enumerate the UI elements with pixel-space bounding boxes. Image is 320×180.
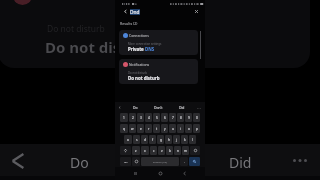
button[interactable]: r (145, 124, 152, 133)
staticText: Do not disturb (128, 71, 148, 75)
button[interactable]: 5 (153, 113, 160, 122)
staticText: 2 (132, 116, 134, 120)
staticText: o (188, 127, 190, 131)
button[interactable]: w (129, 124, 136, 133)
button[interactable]: Search (189, 157, 200, 166)
button[interactable]: n (174, 146, 181, 155)
button[interactable]: Emoji (132, 157, 140, 166)
staticText: l (192, 138, 193, 142)
button[interactable]: q (120, 124, 128, 133)
button[interactable]: f (149, 135, 156, 144)
staticText: e (140, 127, 142, 131)
button[interactable]: t (153, 124, 160, 133)
button[interactable]: Dnd (130, 9, 140, 15)
staticText: u (172, 127, 174, 131)
button[interactable]: Notifications (119, 59, 198, 84)
staticText: q (123, 127, 125, 131)
button[interactable]: 8 (177, 113, 184, 122)
button[interactable]: Shift (120, 146, 131, 155)
staticText: Do (133, 105, 138, 110)
button[interactable]: Period (180, 157, 188, 166)
staticText: y (164, 127, 166, 131)
staticText: ‹ (119, 104, 121, 111)
staticText: p (196, 127, 198, 131)
staticText: Do not disturb (47, 23, 105, 35)
staticText: 5 (156, 116, 158, 120)
button[interactable]: 4 (145, 113, 152, 122)
staticText: n (177, 149, 179, 153)
staticText: 3 (140, 116, 142, 120)
staticText: a (127, 138, 129, 142)
button[interactable]: p (193, 124, 200, 133)
staticText: Notifications (129, 62, 150, 67)
staticText: v (161, 149, 163, 153)
staticText: Did (179, 105, 185, 110)
staticText: j (176, 138, 177, 142)
staticText: 0 (196, 116, 198, 120)
button[interactable]: l (189, 135, 196, 144)
staticText: 1 (123, 116, 125, 120)
button[interactable]: Back (180, 169, 189, 178)
button[interactable]: Home (156, 169, 165, 178)
staticText: • • • (197, 106, 201, 109)
staticText: 9 (188, 116, 190, 120)
button[interactable]: i (177, 124, 184, 133)
staticText: Private (128, 46, 145, 52)
button[interactable]: 9 (185, 113, 192, 122)
button[interactable]: u (169, 124, 176, 133)
staticText: English (UK) (153, 160, 168, 163)
button[interactable]: a (124, 135, 132, 144)
staticText: . (184, 160, 185, 164)
button[interactable]: 2 (129, 113, 136, 122)
staticText: f (152, 138, 154, 142)
button[interactable]: j (173, 135, 180, 144)
staticText: DNS (145, 46, 155, 52)
button[interactable]: 0 (193, 113, 200, 122)
button[interactable]: o (185, 124, 192, 133)
button[interactable]: k (181, 135, 188, 144)
staticText: g (160, 138, 162, 142)
staticText: r (148, 127, 150, 131)
staticText: Do not dist (45, 37, 127, 57)
staticText: h (168, 138, 170, 142)
staticText: i (180, 127, 181, 131)
staticText: m (184, 149, 187, 153)
staticText: Do (70, 153, 89, 172)
staticText: x (144, 149, 146, 153)
button[interactable]: Back (121, 7, 129, 15)
staticText: d (144, 138, 146, 142)
button[interactable]: Clear search (192, 7, 200, 15)
button[interactable]: c (150, 146, 157, 155)
button[interactable]: English (UK) (141, 157, 179, 166)
button[interactable]: g (157, 135, 164, 144)
button[interactable]: 7 (169, 113, 176, 122)
button[interactable]: Recents (131, 169, 140, 178)
staticText: Connections (129, 33, 149, 38)
staticText: b (169, 149, 171, 153)
staticText: 8 (180, 116, 182, 120)
button[interactable]: v (158, 146, 165, 155)
button[interactable]: 3 (137, 113, 144, 122)
button[interactable]: h (165, 135, 172, 144)
staticText: Dnd (130, 9, 140, 15)
button[interactable]: d (141, 135, 148, 144)
staticText: 6 (164, 116, 166, 120)
button[interactable]: 6 (161, 113, 168, 122)
button[interactable]: b (166, 146, 173, 155)
button[interactable]: Backspace (190, 146, 200, 155)
button[interactable]: !#1 (120, 157, 131, 166)
staticText: s (136, 138, 138, 142)
button[interactable]: 1 (120, 113, 128, 122)
button[interactable]: y (161, 124, 168, 133)
staticText: Did (229, 153, 252, 172)
button[interactable]: Connections (119, 30, 198, 55)
staticText: Don't (154, 105, 163, 110)
button[interactable]: e (137, 124, 144, 133)
button[interactable]: x (141, 146, 149, 155)
staticText: Results (2) (120, 21, 138, 26)
staticText: c (153, 149, 155, 153)
button[interactable]: m (182, 146, 189, 155)
button[interactable]: z (132, 146, 140, 155)
staticText: t (156, 127, 158, 131)
button[interactable]: s (133, 135, 140, 144)
